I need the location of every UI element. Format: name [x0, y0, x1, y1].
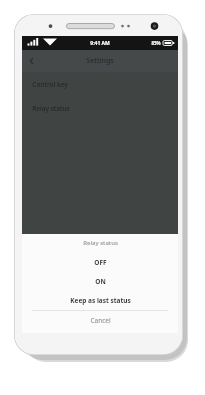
staticText: ON [95, 277, 106, 286]
button[interactable]: OFF [22, 252, 178, 272]
staticText: Relay status [32, 104, 70, 113]
staticText: OFF [94, 258, 107, 267]
button[interactable]: Back [22, 51, 42, 71]
button[interactable]: Cancel [22, 311, 178, 330]
staticText: 9:41 AM [90, 40, 110, 47]
button[interactable]: ON [22, 272, 178, 291]
staticText: Cancel [90, 316, 111, 325]
staticText: Control key [32, 80, 68, 89]
staticText: 85% [151, 40, 161, 46]
staticText: Keep as last status [70, 296, 131, 305]
button[interactable]: Keep as last status [22, 291, 178, 310]
staticText: Relay status [83, 239, 118, 247]
staticText: Settings [86, 56, 114, 66]
